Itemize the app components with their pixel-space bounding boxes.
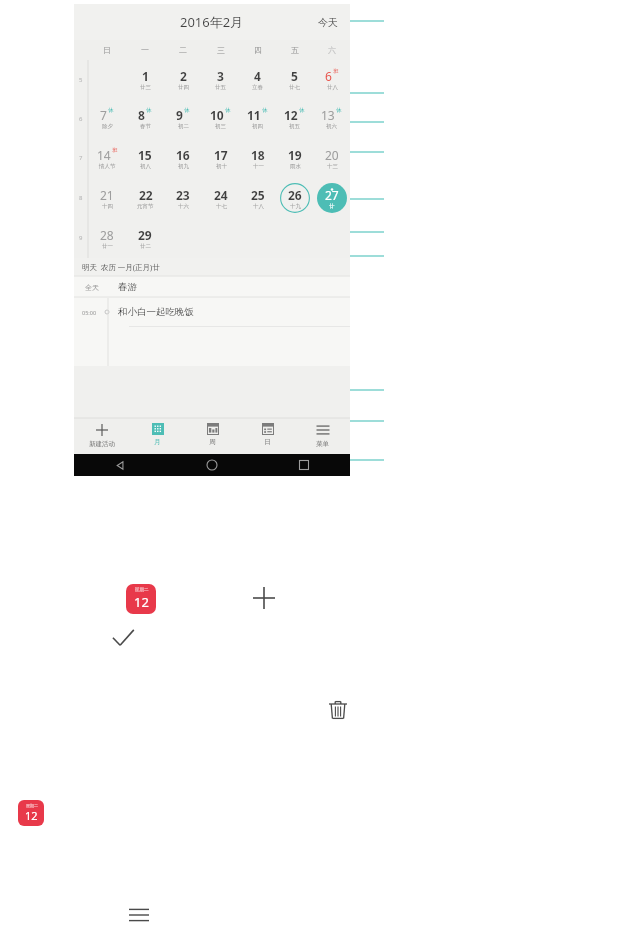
staticText: 11: [247, 107, 261, 123]
button[interactable]: 16: [164, 138, 202, 178]
staticText: 23: [176, 187, 190, 203]
staticText: 廿一: [102, 243, 113, 250]
staticText: 6: [325, 68, 332, 84]
button[interactable]: 25: [239, 178, 276, 218]
button[interactable]: 17: [202, 138, 239, 178]
staticText: 十七: [216, 203, 227, 210]
staticText: 休: [336, 107, 342, 114]
button[interactable]: 28: [88, 218, 126, 258]
staticText: 14: [97, 147, 111, 163]
button[interactable]: 10: [202, 99, 239, 138]
button[interactable]: 18: [239, 138, 276, 178]
button[interactable]: 月视图: [130, 418, 185, 454]
staticText: 情人节: [99, 163, 116, 170]
staticText: 廿七: [289, 84, 300, 91]
staticText: 8: [79, 194, 83, 202]
button[interactable]: 29: [126, 218, 164, 258]
staticText: 1: [142, 68, 149, 84]
staticText: 十四: [102, 203, 113, 210]
button[interactable]: 14: [88, 138, 126, 178]
staticText: 十一: [253, 163, 264, 170]
staticText: 全天: [85, 283, 99, 292]
staticText: 廿: [329, 203, 335, 210]
staticText: 13: [321, 107, 335, 123]
button[interactable]: 2: [164, 60, 202, 99]
button[interactable]: 23: [164, 178, 202, 218]
staticText: 四: [254, 45, 262, 55]
staticText: 菜单: [316, 440, 329, 448]
button[interactable]: 12: [276, 99, 313, 138]
button[interactable]: 24: [202, 178, 239, 218]
button[interactable]: 26: [276, 178, 313, 218]
button[interactable]: 15: [126, 138, 164, 178]
staticText: 春节: [140, 123, 151, 130]
button[interactable]: 7: [88, 99, 126, 138]
button[interactable]: 3: [202, 60, 239, 99]
button[interactable]: 全天: [74, 277, 350, 297]
button[interactable]: 日视图: [240, 418, 295, 454]
button[interactable]: 20: [313, 138, 350, 178]
button[interactable]: 确定: [108, 624, 138, 654]
button[interactable]: 菜单: [295, 418, 350, 454]
staticText: 廿二: [140, 243, 151, 250]
button[interactable]: 8: [126, 99, 164, 138]
staticText: 2016年2月: [180, 13, 244, 31]
button[interactable]: 日历应用图标: [126, 584, 156, 614]
staticText: 月: [154, 438, 161, 446]
button[interactable]: 9: [164, 99, 202, 138]
staticText: 一: [141, 45, 149, 55]
button[interactable]: 1: [126, 60, 164, 99]
staticText: 2: [180, 68, 187, 84]
staticText: 十九: [290, 203, 301, 210]
button[interactable]: 最近任务: [258, 454, 350, 476]
staticText: 28: [100, 227, 114, 243]
button[interactable]: 添加: [250, 584, 278, 612]
button[interactable]: 6: [313, 60, 350, 99]
staticText: 日: [264, 438, 271, 446]
button[interactable]: 4: [239, 60, 276, 99]
button[interactable]: 菜单图标: [126, 902, 152, 928]
staticText: 三: [217, 45, 225, 55]
button[interactable]: 删除: [324, 696, 352, 724]
staticText: 16: [176, 147, 190, 163]
staticText: 9: [79, 234, 83, 242]
button[interactable]: 22: [126, 178, 164, 218]
button[interactable]: 周视图: [185, 418, 240, 454]
staticText: 星期二: [26, 803, 38, 808]
staticText: 廿三: [140, 84, 151, 91]
other: 周视图: [207, 423, 219, 435]
staticText: 26: [288, 187, 302, 203]
button[interactable]: 5: [276, 60, 313, 99]
staticText: 廿四: [178, 84, 189, 91]
staticText: 20: [325, 147, 339, 163]
staticText: 十八: [253, 203, 264, 210]
staticText: 21: [100, 187, 114, 203]
staticText: 29: [138, 227, 152, 243]
staticText: 3: [217, 68, 224, 84]
button[interactable]: 13: [313, 99, 350, 138]
button[interactable]: 主页: [166, 454, 258, 476]
button[interactable]: 11: [239, 99, 276, 138]
staticText: 立春: [252, 84, 263, 91]
button[interactable]: 今天: [306, 8, 350, 37]
button[interactable]: 27: [313, 178, 350, 218]
staticText: 十六: [178, 203, 189, 210]
button[interactable]: 19: [276, 138, 313, 178]
staticText: 12: [134, 593, 149, 611]
staticText: 元宵节: [137, 203, 154, 210]
button[interactable]: 新建活动: [74, 418, 130, 454]
staticText: 五: [291, 45, 299, 55]
button[interactable]: 05:00: [74, 298, 350, 326]
button[interactable]: 21: [88, 178, 126, 218]
button[interactable]: 日历应用图标小: [18, 800, 44, 826]
staticText: 12: [25, 808, 38, 823]
staticText: 雨水: [290, 163, 301, 170]
staticText: 二: [179, 45, 187, 55]
button[interactable]: 返回: [74, 454, 166, 476]
